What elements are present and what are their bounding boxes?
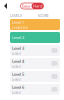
staticText: Locked xyxy=(12,52,21,55)
button[interactable]: Hard xyxy=(31,3,43,9)
button[interactable]: Back xyxy=(2,0,10,12)
button[interactable]: Level 5 xyxy=(10,71,60,82)
staticText: Level 4 xyxy=(12,59,24,64)
staticText: Level 2 xyxy=(12,35,24,40)
staticText: Level 3 xyxy=(12,46,24,51)
staticText: Easy xyxy=(22,3,30,9)
button[interactable]: Level 4 xyxy=(10,58,60,69)
staticText: Hard xyxy=(33,3,42,9)
staticText: SCORE xyxy=(37,13,48,18)
staticText: Level 6 xyxy=(12,85,24,90)
staticText: Level 5 xyxy=(12,72,24,77)
button[interactable]: Level 1 xyxy=(10,19,60,30)
staticText: Level 1 xyxy=(12,20,24,25)
button[interactable]: Level 2 xyxy=(10,32,60,43)
staticText: Locked xyxy=(12,91,21,94)
staticText: Locked xyxy=(12,78,21,81)
button[interactable]: Easy xyxy=(20,3,31,9)
staticText: Locked xyxy=(12,65,21,68)
button[interactable]: Level 3 xyxy=(10,45,60,56)
staticText: LEVELS xyxy=(10,13,22,18)
staticText: Completed xyxy=(12,26,28,29)
button[interactable]: Level 6 xyxy=(10,84,60,95)
